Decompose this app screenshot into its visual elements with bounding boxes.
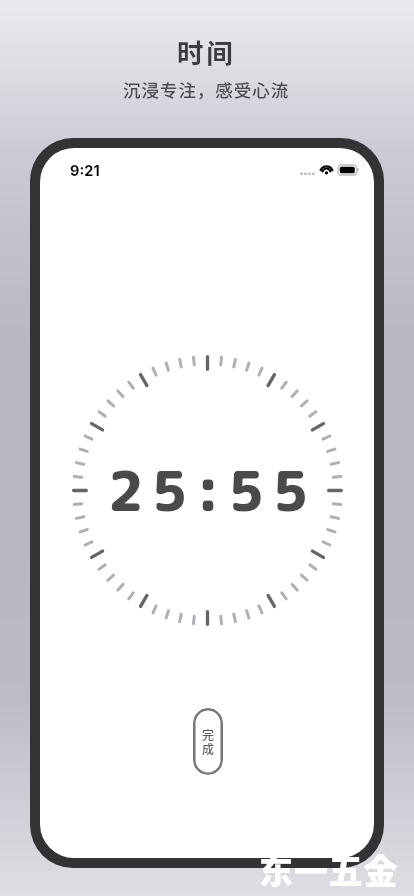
staticText: 成 xyxy=(202,740,215,757)
staticText: 25:55 xyxy=(107,451,317,528)
staticText: 时间 xyxy=(177,32,236,70)
other: Cellular signal xyxy=(299,169,316,179)
button[interactable]: 完 xyxy=(193,708,223,775)
staticText: 完 xyxy=(202,726,215,743)
staticText: 9:21 xyxy=(70,162,100,180)
staticText: 沉浸专注，感受心流 xyxy=(123,77,290,102)
other: Wi-Fi xyxy=(319,164,334,174)
staticText: 东一五金 xyxy=(259,845,399,894)
other: Battery xyxy=(338,165,359,175)
